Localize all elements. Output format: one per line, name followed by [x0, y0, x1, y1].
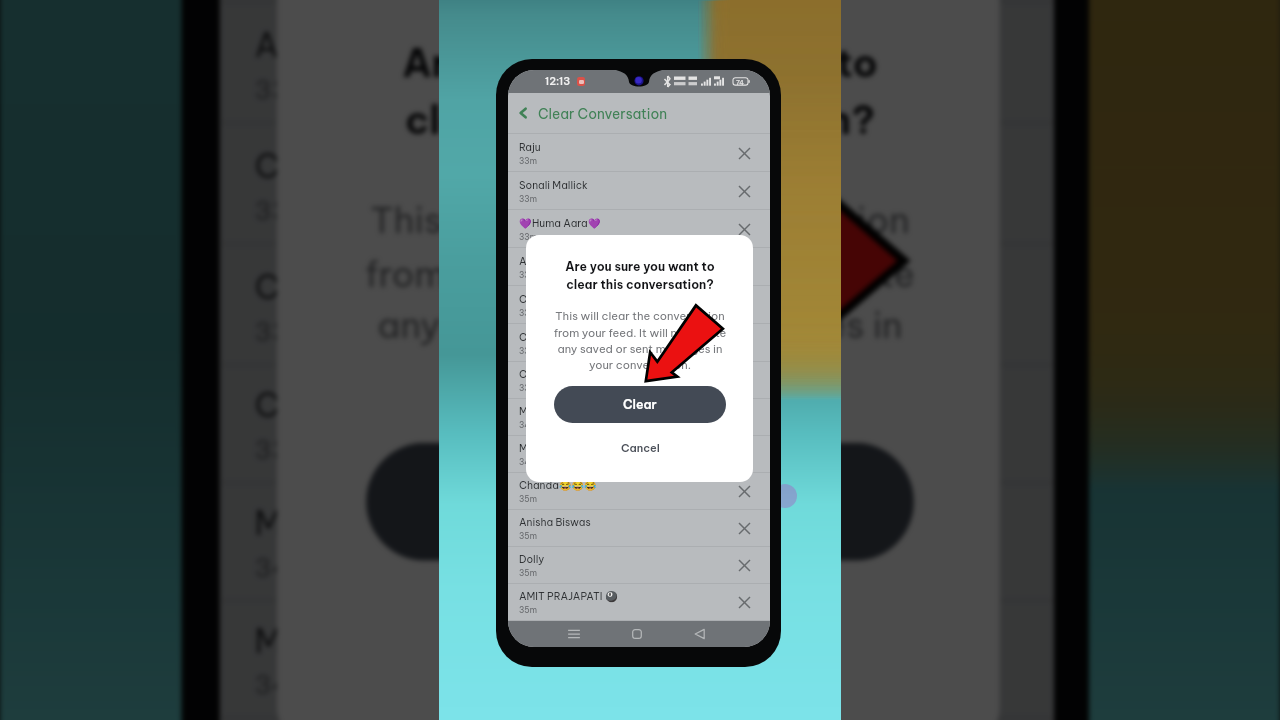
button[interactable]: Dolly: [508, 547, 770, 584]
button[interactable]: Raju: [508, 134, 770, 172]
button[interactable]: Clear: [554, 386, 726, 423]
staticText: 33m: [255, 73, 312, 105]
staticText: 12:13: [545, 75, 571, 88]
staticText: Chotu: [519, 331, 550, 344]
button[interactable]: Chotu: [508, 324, 770, 362]
staticText: 🎱: [603, 590, 618, 603]
staticText: Cancel: [621, 441, 660, 455]
staticText: Chanda: [519, 479, 559, 492]
staticText: 33m: [255, 433, 312, 465]
staticText: Chirag: [519, 368, 553, 381]
staticText: Chotu: [255, 268, 353, 309]
staticText: 35m: [519, 494, 537, 504]
staticText: Chirag: [255, 385, 363, 427]
staticText: 34m: [255, 551, 315, 583]
button[interactable]: Manish: [220, 484, 1054, 602]
button[interactable]: Mohit: [220, 602, 1054, 720]
staticText: AMIT PRAJAPATI: [519, 590, 603, 603]
staticText: Sonali Mallick: [519, 179, 588, 192]
button[interactable]: Mohit: [508, 436, 770, 473]
staticText: Are you sure you want to clear this conv…: [537, 259, 743, 292]
button[interactable]: Akash: [508, 248, 770, 286]
staticText: Huma Aara: [532, 217, 588, 230]
staticText: 74: [736, 78, 744, 86]
staticText: Are you sure you want to clear this conv…: [312, 38, 968, 143]
staticText: Manish: [255, 503, 369, 545]
staticText: 34m: [255, 669, 315, 701]
staticText: 33m: [519, 270, 537, 280]
staticText: Akash: [255, 26, 353, 67]
staticText: 35m: [519, 531, 537, 541]
button[interactable]: Chandan: [508, 286, 770, 324]
button[interactable]: Remove Dolly: [739, 560, 750, 571]
button[interactable]: AMIT PRAJAPATI: [508, 584, 770, 621]
button[interactable]: Remove Sonali Mallick: [739, 186, 750, 197]
button[interactable]: Remove Anisha Biswas: [739, 523, 750, 534]
staticText: 33m: [255, 194, 312, 226]
button[interactable]: Remove Huma Aara: [739, 224, 750, 235]
staticText: 33m: [255, 315, 312, 347]
staticText: 33m: [519, 156, 537, 166]
staticText: Anisha Biswas: [519, 516, 591, 529]
staticText: 35m: [519, 568, 537, 578]
staticText: 33m: [519, 232, 537, 242]
button[interactable]: Remove AMIT PRAJAPATI: [739, 597, 750, 608]
staticText: 33m: [519, 194, 537, 204]
button[interactable]: Remove Raju: [739, 148, 750, 159]
staticText: Mohit: [519, 442, 548, 455]
button[interactable]: Recent apps: [563, 623, 585, 645]
staticText: Clear Conversation: [538, 105, 668, 122]
staticText: 😂😂😂: [559, 480, 597, 492]
staticText: 35m: [519, 605, 537, 615]
button[interactable]: Cancel: [554, 431, 726, 465]
staticText: This will clear the conversation from yo…: [537, 309, 743, 372]
button[interactable]: Home: [626, 623, 648, 645]
button[interactable]: Sonali Mallick: [508, 172, 770, 210]
staticText: 33m: [519, 346, 537, 356]
button[interactable]: Akash: [220, 3, 1054, 124]
staticText: 💜: [588, 218, 601, 230]
staticText: 💜: [519, 218, 532, 230]
staticText: 33m: [519, 308, 537, 318]
button[interactable]: Chandan: [220, 124, 1054, 245]
staticText: Mohit: [255, 621, 347, 663]
button[interactable]: Clear: [366, 443, 914, 561]
button[interactable]: Anisha Biswas: [508, 510, 770, 547]
staticText: Akash: [519, 255, 550, 268]
button[interactable]: Clear Conversation: [517, 93, 668, 133]
button[interactable]: 💜: [508, 210, 770, 248]
staticText: Chandan: [255, 147, 401, 188]
button[interactable]: Chirag: [508, 362, 770, 399]
staticText: 33m: [519, 383, 537, 393]
staticText: Cancel: [579, 618, 704, 663]
staticText: Dolly: [519, 553, 545, 566]
button[interactable]: Chanda: [508, 473, 770, 510]
staticText: Manish: [519, 405, 555, 418]
button[interactable]: Remove Chanda: [739, 486, 750, 497]
button[interactable]: Cancel: [366, 586, 914, 694]
staticText: Clear: [586, 478, 694, 529]
staticText: Chandan: [519, 293, 565, 306]
button[interactable]: Manish: [508, 399, 770, 436]
button[interactable]: Chotu: [220, 245, 1054, 366]
staticText: Raju: [519, 141, 541, 154]
staticText: This will clear the conversation from yo…: [312, 198, 968, 398]
button[interactable]: Chirag: [220, 366, 1054, 484]
button[interactable]: Back: [689, 623, 711, 645]
button[interactable]: 💜: [220, 0, 1054, 3]
staticText: 34m: [519, 420, 538, 430]
staticText: 34m: [519, 457, 538, 467]
staticText: Clear: [623, 397, 657, 413]
